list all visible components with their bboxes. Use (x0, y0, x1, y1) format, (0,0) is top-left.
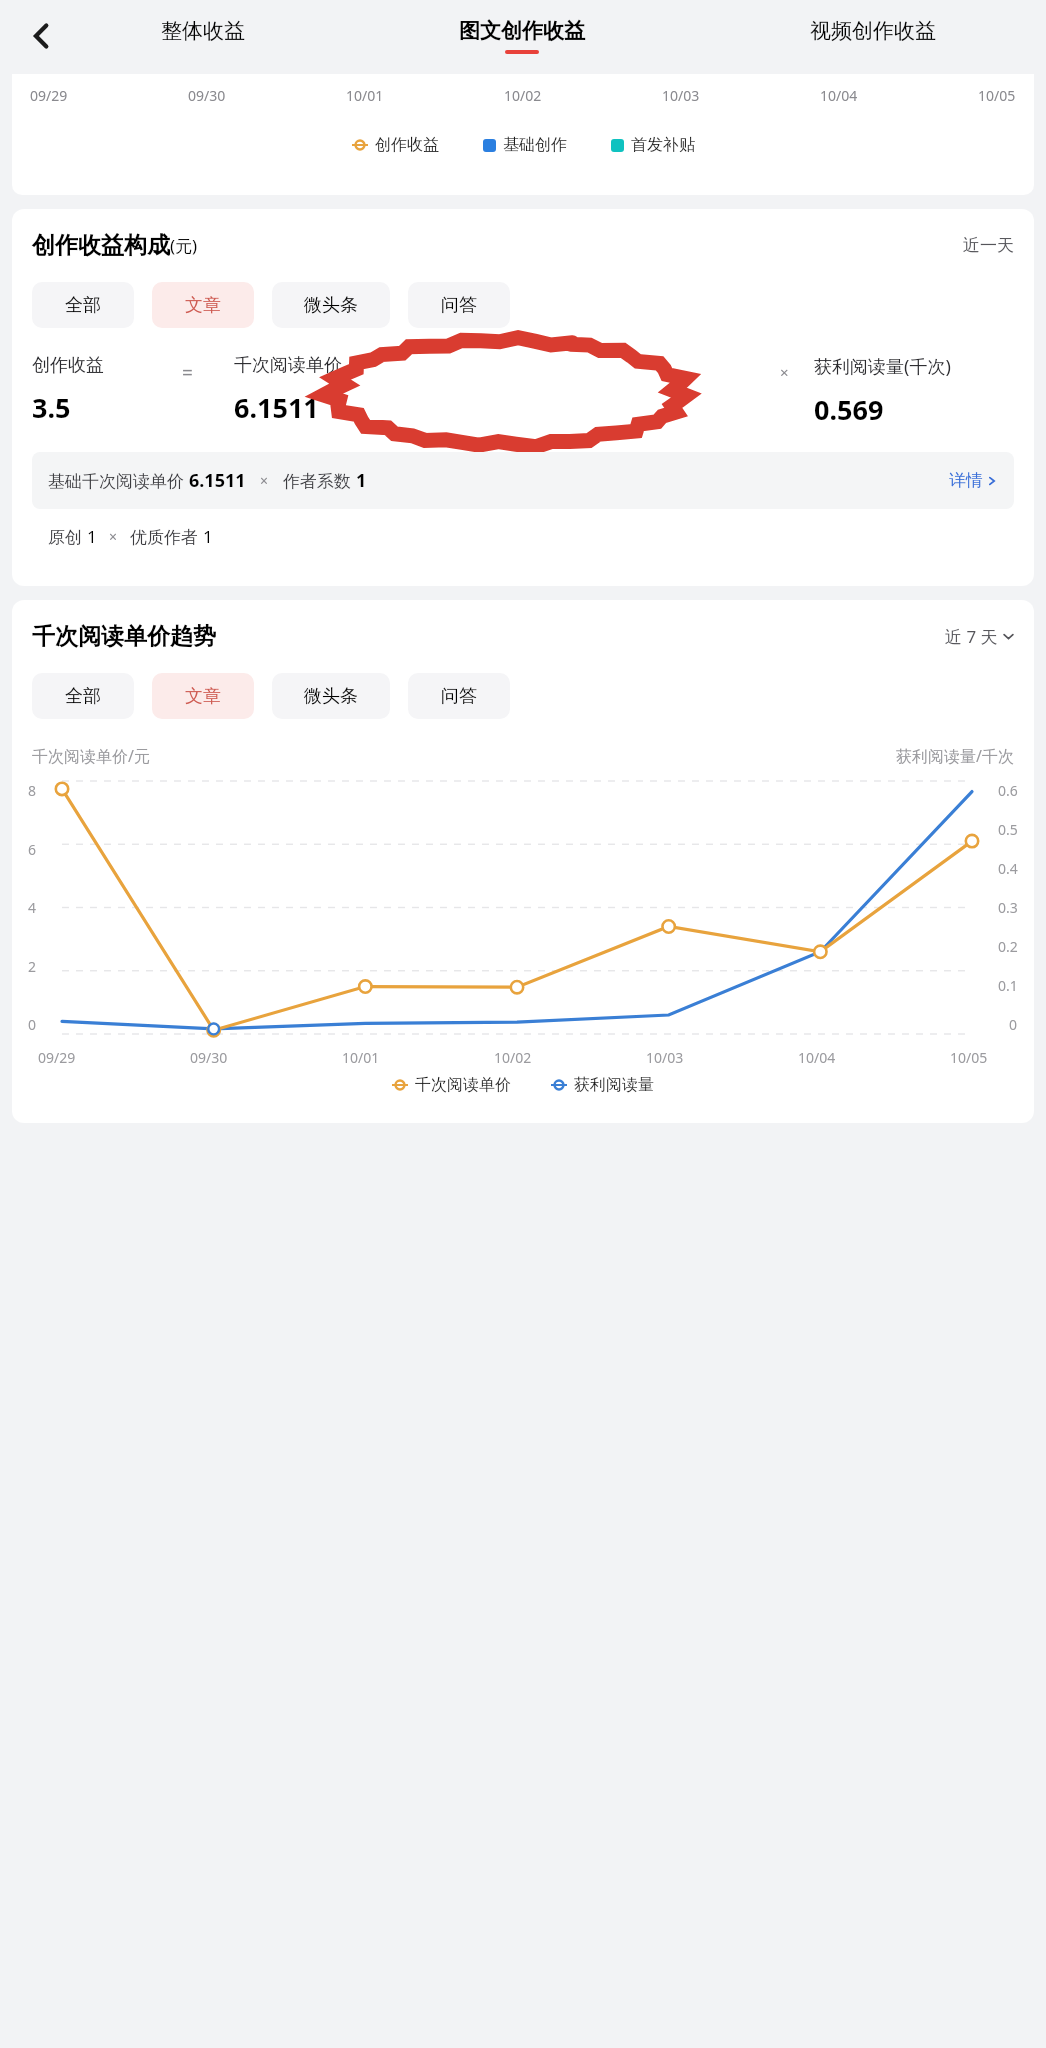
staticText: 10/01 (342, 1048, 380, 1067)
staticText: 10/03 (662, 86, 700, 105)
button[interactable]: 微头条 (272, 282, 390, 328)
staticText: 0.3 (998, 898, 1018, 917)
staticText: 整体收益 (161, 18, 245, 44)
staticText: 近 7 天 (945, 625, 998, 648)
staticText: 09/30 (188, 86, 226, 105)
staticText: 10/02 (504, 86, 542, 105)
staticText: 2 (28, 957, 37, 976)
staticText: 首发补贴 (631, 135, 695, 155)
staticText: 10/04 (798, 1048, 836, 1067)
button[interactable]: 图文创作收益 (358, 18, 685, 54)
staticText: 0.569 (814, 391, 884, 428)
staticText: (元) (170, 234, 198, 257)
staticText: 微头条 (304, 294, 358, 317)
staticText: 文章 (185, 294, 221, 317)
staticText: 10/01 (346, 86, 384, 105)
staticText: 获利阅读量 (574, 1075, 654, 1095)
staticText: 问答 (441, 685, 477, 708)
staticText: 1 (203, 525, 213, 548)
staticText: 基础创作 (503, 135, 567, 155)
button[interactable]: Back (12, 10, 64, 62)
staticText: 09/30 (190, 1048, 228, 1067)
button[interactable]: 近 7 天 (945, 625, 1014, 648)
button[interactable]: 整体收益 (72, 18, 334, 54)
button[interactable]: 文章 (152, 282, 254, 328)
staticText: × (260, 471, 269, 490)
staticText: 8 (28, 781, 37, 800)
staticText: 视频创作收益 (810, 18, 936, 44)
button[interactable]: 文章 (152, 673, 254, 719)
staticText: 获利阅读量/千次 (896, 745, 1014, 767)
staticText: 作者系数 (283, 469, 356, 492)
staticText: 3.5 (32, 389, 71, 426)
staticText: 优质作者 (130, 525, 203, 548)
staticText: 09/29 (30, 86, 68, 105)
staticText: 全部 (65, 294, 101, 317)
staticText: 详情 (949, 470, 983, 491)
staticText: 1 (356, 468, 367, 493)
button[interactable]: 详情 (949, 470, 998, 491)
staticText: 10/05 (950, 1048, 988, 1067)
staticText: 问答 (441, 294, 477, 317)
button[interactable]: 近一天 (963, 235, 1014, 256)
staticText: 0 (28, 1015, 37, 1034)
staticText: 创作收益 (375, 135, 439, 155)
staticText: 0.6 (998, 781, 1018, 800)
staticText: = (182, 360, 193, 386)
button[interactable]: 问答 (408, 673, 510, 719)
staticText: 0.4 (998, 859, 1018, 878)
staticText: 10/04 (820, 86, 858, 105)
staticText: 10/02 (494, 1048, 532, 1067)
staticText: 6.1511 (234, 389, 319, 426)
button[interactable]: 全部 (32, 673, 134, 719)
staticText: 创作收益 (32, 354, 104, 377)
staticText: 千次阅读单价 (234, 354, 342, 377)
staticText: 全部 (65, 685, 101, 708)
staticText: 0.2 (998, 937, 1018, 956)
staticText: 获利阅读量(千次) (814, 354, 951, 379)
staticText: 0.5 (998, 820, 1018, 839)
button[interactable]: 问答 (408, 282, 510, 328)
staticText: 0 (1009, 1015, 1018, 1034)
staticText: 6 (28, 840, 37, 859)
staticText: 创作收益构成 (32, 231, 170, 260)
staticText: 图文创作收益 (459, 18, 585, 44)
staticText: 文章 (185, 685, 221, 708)
staticText: 千次阅读单价/元 (32, 745, 150, 767)
staticText: 10/03 (646, 1048, 684, 1067)
staticText: 基础千次阅读单价 (48, 469, 189, 492)
staticText: 千次阅读单价趋势 (32, 622, 216, 651)
staticText: 4 (28, 898, 37, 917)
staticText: 0.1 (998, 976, 1018, 995)
staticText: × (780, 362, 789, 382)
staticText: 09/29 (38, 1048, 76, 1067)
staticText: 千次阅读单价 (415, 1075, 511, 1095)
staticText: 10/05 (978, 86, 1016, 105)
staticText: 原创 (48, 525, 87, 548)
staticText: × (109, 527, 118, 546)
staticText: 6.1511 (189, 468, 246, 493)
button[interactable]: 全部 (32, 282, 134, 328)
staticText: 1 (87, 525, 97, 548)
button[interactable]: 微头条 (272, 673, 390, 719)
button[interactable]: 视频创作收益 (709, 18, 1036, 54)
staticText: 微头条 (304, 685, 358, 708)
